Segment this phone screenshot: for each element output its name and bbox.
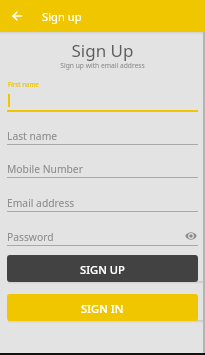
staticText: Sign up with email address: [0, 61, 205, 70]
button[interactable]: Show password: [184, 229, 198, 243]
button[interactable]: Email address: [7, 191, 198, 212]
staticText: First name: [8, 80, 39, 88]
button[interactable]: Back: [7, 6, 27, 26]
staticText: Password: [7, 230, 54, 244]
staticText: SIGN IN: [81, 301, 124, 316]
button[interactable]: First name: [7, 79, 198, 112]
staticText: SIGN UP: [80, 262, 125, 277]
button[interactable]: Mobile Number: [7, 157, 198, 178]
staticText: Email address: [7, 196, 75, 210]
staticText: Last name: [7, 129, 58, 143]
button[interactable]: Last name: [7, 124, 198, 145]
button[interactable]: SIGN UP: [7, 255, 198, 282]
button[interactable]: Password: [7, 225, 198, 246]
staticText: Sign up: [42, 9, 82, 24]
staticText: Mobile Number: [7, 162, 83, 176]
staticText: Sign Up: [0, 39, 205, 62]
button[interactable]: SIGN IN: [7, 294, 198, 321]
